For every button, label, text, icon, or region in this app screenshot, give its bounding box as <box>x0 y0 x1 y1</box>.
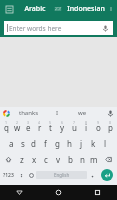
button[interactable]: x <box>28 151 40 167</box>
button[interactable]: ?123 <box>1 167 16 183</box>
staticText: 0 <box>109 120 112 125</box>
button[interactable]: 2 <box>12 119 23 135</box>
button[interactable]: English <box>36 171 87 179</box>
staticText: d <box>31 138 36 149</box>
staticText: f <box>44 138 47 149</box>
staticText: r <box>38 122 42 133</box>
button[interactable]: g <box>51 135 63 151</box>
button[interactable]: Backspace <box>100 151 116 167</box>
button[interactable]: Swap languages <box>52 3 64 15</box>
button[interactable]: v <box>52 151 64 167</box>
button[interactable]: Indonesian <box>64 0 107 18</box>
staticText: 8 <box>85 120 88 125</box>
staticText: x <box>32 154 37 165</box>
button[interactable]: d <box>28 135 39 151</box>
staticText: I <box>56 109 59 117</box>
button[interactable]: 5 <box>45 119 56 135</box>
button[interactable]: Recents <box>78 185 117 200</box>
staticText: English <box>54 172 70 178</box>
button[interactable]: 1 <box>1 119 12 135</box>
staticText: 5 <box>49 120 52 125</box>
staticText: s <box>21 138 25 149</box>
staticText: j <box>80 138 83 149</box>
button[interactable]: Home <box>39 185 78 200</box>
staticText: z <box>20 154 24 165</box>
button[interactable]: n <box>76 151 88 167</box>
button[interactable]: m <box>88 151 100 167</box>
button[interactable]: b <box>64 151 76 167</box>
staticText: Enter words here <box>9 24 62 33</box>
staticText: 3 <box>27 120 30 125</box>
button[interactable]: thanks <box>13 109 45 117</box>
button[interactable]: 8 <box>80 119 92 135</box>
button[interactable]: Menu <box>3 3 16 16</box>
staticText: 1 <box>5 120 8 125</box>
button[interactable]: Back <box>0 185 39 200</box>
staticText: i <box>85 122 88 133</box>
button[interactable]: 6 <box>56 119 68 135</box>
button[interactable]: j <box>75 135 87 151</box>
button[interactable]: Shift <box>1 151 16 167</box>
button[interactable]: Enter <box>101 169 113 181</box>
button[interactable]: Emoji <box>26 167 36 183</box>
button[interactable]: 9 <box>92 119 104 135</box>
button[interactable]: Arabic <box>17 0 52 18</box>
button[interactable]: s <box>17 135 28 151</box>
staticText: 7 <box>73 120 76 125</box>
staticText: Indonesian <box>67 4 105 14</box>
staticText: v <box>56 154 61 165</box>
staticText: Arabic <box>24 4 46 14</box>
button[interactable]: l <box>99 135 111 151</box>
staticText: g <box>55 138 60 149</box>
staticText: h <box>67 138 72 149</box>
staticText: u <box>72 122 77 133</box>
staticText: m <box>90 154 98 165</box>
staticText: 6 <box>61 120 64 125</box>
staticText: t <box>49 122 52 133</box>
staticText: we <box>78 109 87 117</box>
staticText: e <box>26 122 31 133</box>
button[interactable]: we <box>70 109 95 117</box>
button[interactable]: Google <box>2 109 11 118</box>
button[interactable]: k <box>87 135 99 151</box>
staticText: c <box>44 154 48 165</box>
staticText: w <box>14 122 21 133</box>
button[interactable]: 3 <box>23 119 34 135</box>
button[interactable]: Enter words here <box>4 21 113 35</box>
staticText: p <box>108 122 113 133</box>
button[interactable]: Comma <box>16 167 26 183</box>
button[interactable]: More options <box>107 0 114 18</box>
button[interactable]: Voice input <box>100 23 110 33</box>
staticText: 4 <box>38 120 41 125</box>
button[interactable]: Voice typing <box>105 108 115 118</box>
button[interactable]: I <box>45 109 70 117</box>
staticText: 2 <box>16 120 19 125</box>
button[interactable]: f <box>39 135 51 151</box>
staticText: y <box>60 122 65 133</box>
staticText: o <box>96 122 101 133</box>
button[interactable]: h <box>63 135 75 151</box>
staticText: thanks <box>19 109 39 117</box>
staticText: a <box>9 138 14 149</box>
button[interactable]: 0 <box>104 119 116 135</box>
staticText: n <box>80 154 85 165</box>
button[interactable]: c <box>40 151 52 167</box>
staticText: l <box>104 138 107 149</box>
button[interactable]: 7 <box>68 119 80 135</box>
button[interactable]: z <box>16 151 28 167</box>
staticText: q <box>4 122 9 133</box>
button[interactable]: 4 <box>34 119 45 135</box>
staticText: k <box>91 138 96 149</box>
staticText: 9 <box>97 120 100 125</box>
button[interactable]: a <box>6 135 17 151</box>
staticText: b <box>68 154 73 165</box>
staticText: ?123 <box>3 172 14 179</box>
button[interactable]: Period <box>87 167 97 183</box>
